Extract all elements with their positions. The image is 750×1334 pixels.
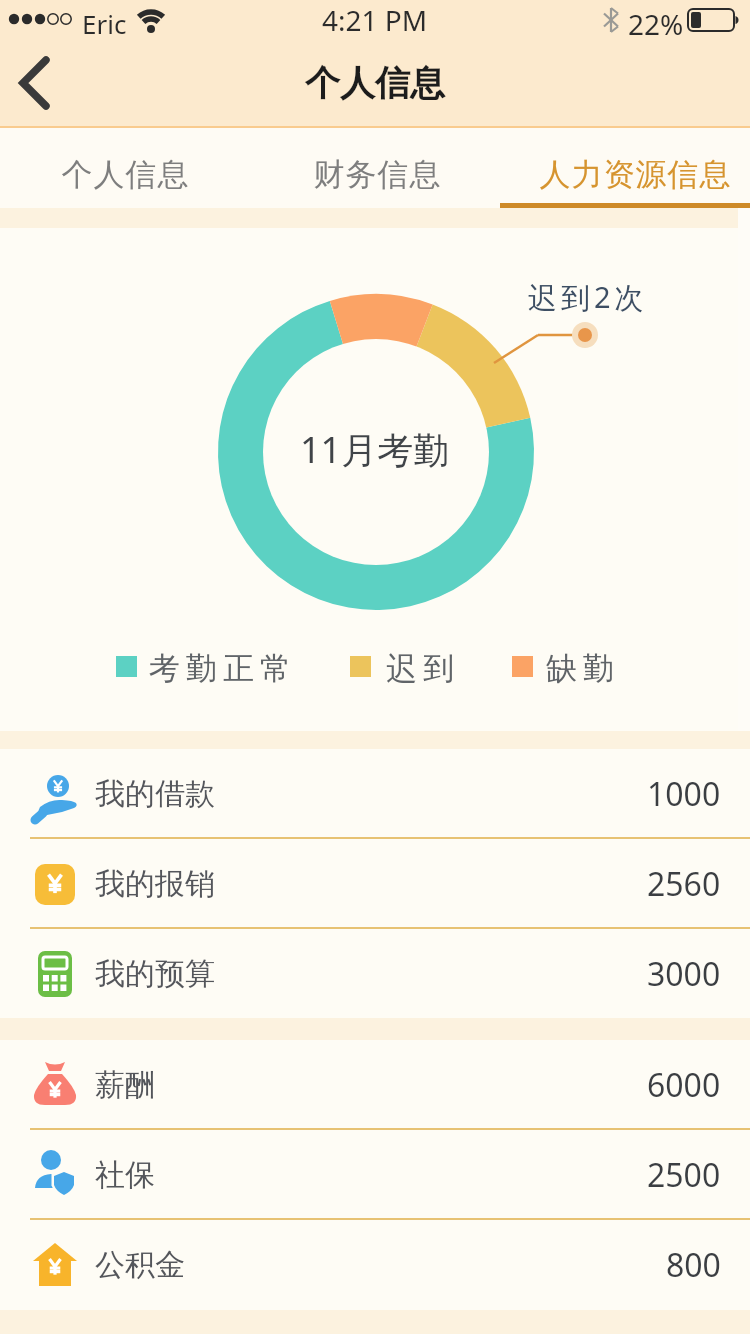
- staticText: 800: [666, 1243, 721, 1287]
- staticText: 人力资源信息: [539, 155, 731, 194]
- staticText: 迟到: [383, 649, 457, 688]
- staticText: Eric: [82, 6, 127, 41]
- button[interactable]: 公积金: [0, 1220, 750, 1310]
- button[interactable]: 人力资源信息: [500, 128, 750, 208]
- staticText: 我的预算: [95, 955, 215, 993]
- staticText: 6000: [647, 1063, 721, 1107]
- staticText: 公积金: [95, 1246, 185, 1284]
- button[interactable]: [6, 54, 66, 114]
- button[interactable]: 社保: [0, 1130, 750, 1220]
- button[interactable]: 薪酬: [0, 1040, 750, 1130]
- staticText: 个人信息: [305, 61, 445, 105]
- staticText: 3000: [647, 952, 721, 996]
- button[interactable]: 财务信息: [250, 128, 500, 208]
- button[interactable]: 我的预算: [0, 929, 750, 1019]
- staticText: 2500: [647, 1153, 721, 1197]
- staticText: 财务信息: [313, 155, 441, 194]
- staticText: 11月考勤: [300, 425, 450, 473]
- staticText: 4:21 PM: [322, 1, 428, 39]
- staticText: 缺勤: [543, 649, 617, 688]
- staticText: 个人信息: [61, 155, 189, 194]
- staticText: 2560: [647, 862, 721, 906]
- staticText: 迟到2次: [528, 277, 648, 317]
- staticText: 考勤正常: [146, 649, 294, 688]
- staticText: 我的借款: [95, 775, 215, 813]
- staticText: 薪酬: [95, 1066, 155, 1104]
- staticText: 22%: [628, 5, 684, 43]
- button[interactable]: 我的报销: [0, 839, 750, 929]
- staticText: 1000: [647, 772, 721, 816]
- button[interactable]: 个人信息: [0, 128, 250, 208]
- staticText: 我的报销: [95, 865, 215, 903]
- button[interactable]: 我的借款: [0, 749, 750, 839]
- staticText: 社保: [95, 1156, 155, 1194]
